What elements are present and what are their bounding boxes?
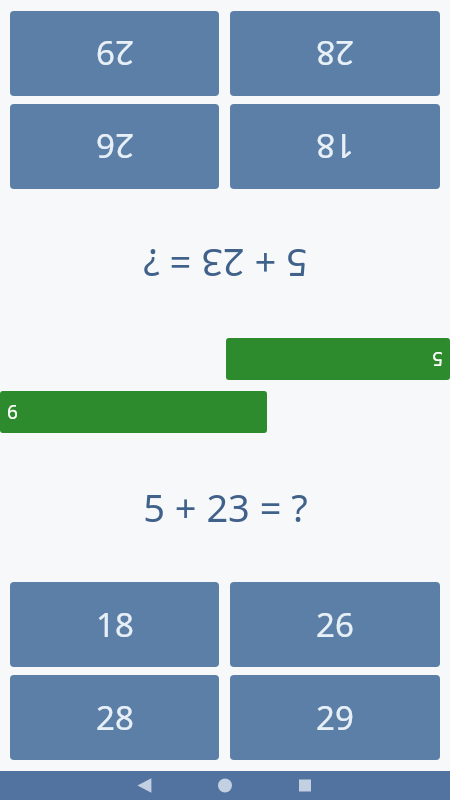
staticText: 28 xyxy=(96,695,134,740)
button[interactable]: 26 xyxy=(230,582,440,667)
button[interactable]: Back xyxy=(121,771,169,800)
staticText: 26 xyxy=(316,602,354,647)
button[interactable]: 29 xyxy=(10,11,219,96)
staticText: 5 xyxy=(432,346,443,372)
button[interactable]: Home xyxy=(201,771,249,800)
button[interactable]: 18 xyxy=(10,582,219,667)
button[interactable]: Recent apps xyxy=(281,771,329,800)
button[interactable]: 29 xyxy=(230,675,440,760)
button[interactable]: 18 xyxy=(230,104,440,189)
staticText: 18 xyxy=(96,602,134,647)
button[interactable]: 28 xyxy=(230,11,440,96)
staticText: 26 xyxy=(96,124,134,169)
staticText: 18 xyxy=(316,124,354,169)
button[interactable]: 28 xyxy=(10,675,219,760)
staticText: 6 xyxy=(7,399,18,425)
staticText: 28 xyxy=(316,31,354,76)
button[interactable]: 26 xyxy=(10,104,219,189)
staticText: 29 xyxy=(316,695,354,740)
staticText: 5 + 23 = ? xyxy=(143,238,308,290)
staticText: 5 + 23 = ? xyxy=(143,481,308,533)
staticText: 29 xyxy=(96,31,134,76)
